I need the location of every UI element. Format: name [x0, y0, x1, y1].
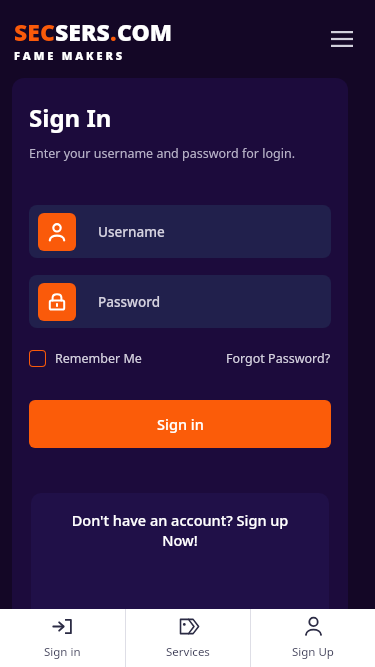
staticText: Don't have an account? Sign up Now! — [59, 510, 301, 550]
staticText: Password — [98, 293, 161, 311]
staticText: Remember Me — [55, 350, 142, 367]
button[interactable]: Don't have an account? Sign up Now! — [31, 493, 329, 609]
staticText: SERS — [55, 16, 110, 47]
staticText: Sign in — [157, 414, 204, 434]
button[interactable]: Sign in — [0, 609, 125, 667]
button[interactable]: Open menu — [325, 22, 359, 56]
button[interactable]: Password — [29, 275, 331, 328]
button[interactable]: Username — [29, 205, 331, 258]
staticText: Enter your username and password for log… — [29, 145, 296, 162]
staticText: Username — [98, 223, 165, 241]
staticText: F A M E M A K E R S — [14, 48, 123, 63]
staticText: Sign In — [29, 101, 112, 134]
staticText: Sign in — [44, 644, 81, 660]
button[interactable]: Sign Up — [251, 609, 375, 667]
button[interactable]: Sign in — [29, 400, 331, 448]
button[interactable]: Forgot Password? — [226, 350, 331, 367]
staticText: Sign Up — [292, 644, 334, 660]
button[interactable]: Services — [126, 609, 250, 667]
staticText: Services — [166, 644, 210, 660]
staticText: COM — [117, 16, 173, 47]
button[interactable]: Remember Me — [29, 350, 142, 367]
staticText: . — [110, 16, 117, 47]
staticText: SEC — [14, 16, 55, 47]
